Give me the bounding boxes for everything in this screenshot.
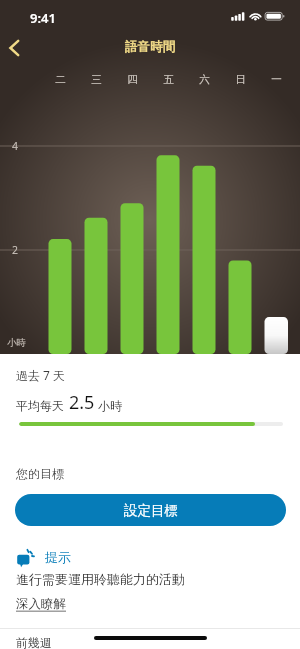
- staticText: 設定目標: [124, 502, 178, 519]
- button[interactable]: 三: [78, 71, 114, 87]
- staticText: 9:41: [30, 9, 56, 27]
- button[interactable]: Back: [0, 28, 32, 58]
- staticText: 過去 7 天: [16, 367, 66, 383]
- button[interactable]: 深入瞭解: [16, 596, 66, 612]
- staticText: 2.5: [69, 390, 95, 415]
- staticText: 平均每天: [16, 398, 64, 413]
- staticText: 五: [163, 73, 174, 86]
- staticText: 4: [12, 139, 19, 153]
- staticText: 三: [91, 73, 102, 86]
- button[interactable]: 前幾週: [16, 635, 52, 649]
- staticText: 2: [12, 243, 19, 257]
- button[interactable]: 五: [150, 71, 186, 87]
- staticText: 小時: [98, 398, 122, 413]
- staticText: 小時: [7, 337, 26, 349]
- staticText: 語音時間: [125, 39, 175, 55]
- staticText: 提示: [45, 549, 71, 565]
- staticText: 一: [271, 73, 282, 86]
- button[interactable]: 四: [114, 71, 150, 87]
- staticText: 日: [235, 73, 246, 86]
- button[interactable]: 日: [222, 71, 258, 87]
- staticText: 您的目標: [16, 466, 64, 481]
- staticText: 進行需要運用聆聽能力的活動: [16, 571, 185, 587]
- button[interactable]: 二: [42, 71, 78, 87]
- staticText: 六: [199, 73, 210, 86]
- staticText: 二: [55, 73, 66, 86]
- button[interactable]: 設定目標: [15, 494, 286, 526]
- other: Tip: [14, 546, 38, 564]
- button[interactable]: 六: [186, 71, 222, 87]
- button[interactable]: 一: [258, 71, 294, 87]
- staticText: 四: [127, 73, 138, 86]
